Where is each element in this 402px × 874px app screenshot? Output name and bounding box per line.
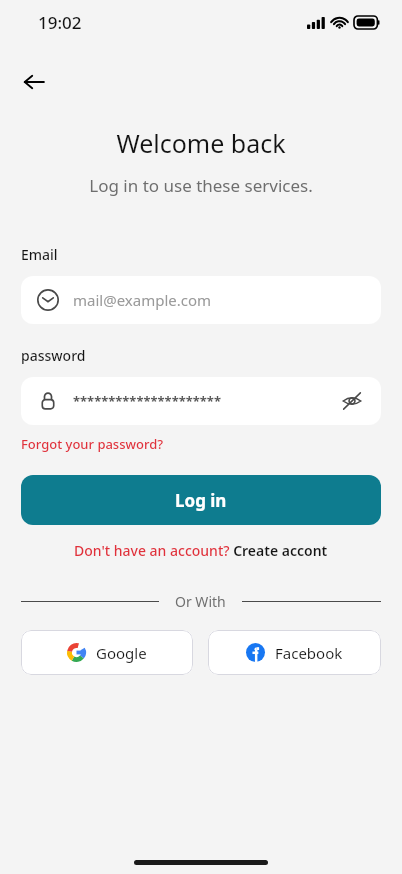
button[interactable]: Log in: [21, 475, 381, 525]
staticText: *********************: [73, 392, 337, 410]
button[interactable]: Back: [14, 62, 54, 102]
button[interactable]: Google: [21, 630, 193, 675]
staticText: Facebook: [275, 643, 343, 663]
staticText: Forgot your password?: [21, 435, 164, 453]
staticText: Log in to use these services.: [0, 174, 402, 197]
button[interactable]: Facebook: [208, 630, 381, 675]
staticText: Welcome back: [0, 126, 402, 160]
staticText: 19:02: [38, 11, 82, 34]
staticText: Log in: [175, 489, 227, 512]
button[interactable]: Toggle password visibility: [337, 386, 367, 416]
button[interactable]: *********************: [21, 377, 381, 425]
staticText: Or With: [175, 592, 226, 611]
staticText: mail@example.com: [73, 290, 212, 310]
button[interactable]: Don't have an account? Create accont: [74, 541, 328, 560]
staticText: password: [21, 346, 86, 365]
button[interactable]: Forgot your password?: [21, 435, 164, 453]
staticText: Google: [96, 643, 147, 663]
button[interactable]: mail@example.com: [21, 276, 381, 324]
staticText: Don't have an account? Create accont: [74, 541, 328, 560]
staticText: Email: [21, 245, 58, 264]
